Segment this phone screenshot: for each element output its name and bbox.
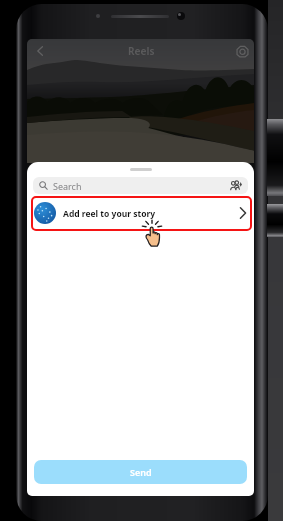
button[interactable]: Camera (233, 42, 251, 60)
button[interactable]: Search (33, 177, 248, 194)
button[interactable]: Back (31, 42, 49, 60)
staticText: Search (53, 180, 82, 192)
button[interactable]: Send (34, 460, 247, 484)
staticText: Add reel to your story (63, 208, 156, 220)
staticText: Reels (128, 44, 155, 58)
staticText: Send (130, 466, 152, 478)
button[interactable]: Add reel to your story (31, 196, 252, 231)
